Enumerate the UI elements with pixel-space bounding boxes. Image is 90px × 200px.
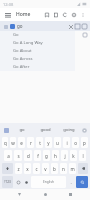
staticText: g [45, 153, 48, 159]
button[interactable]: v [42, 163, 49, 174]
button[interactable]: going [57, 123, 80, 136]
button[interactable]: t [36, 137, 43, 148]
staticText: Go [13, 32, 19, 38]
staticText: p [83, 140, 86, 146]
button[interactable]: Recent apps [65, 189, 76, 200]
staticText: e [20, 140, 23, 146]
button[interactable]: a [4, 150, 12, 161]
button[interactable]: p [81, 137, 88, 148]
button[interactable]: Menu [3, 10, 13, 20]
button[interactable]: Go A Long Way [0, 39, 75, 47]
button[interactable]: Clear [67, 23, 74, 30]
button[interactable]: ?123 [2, 176, 13, 188]
button[interactable]: Go After [0, 63, 75, 71]
staticText: y [47, 140, 50, 146]
button[interactable]: Tabs [51, 10, 60, 19]
button[interactable]: h [52, 150, 59, 161]
button[interactable]: Go [0, 31, 75, 39]
button[interactable]: Account [69, 10, 78, 19]
staticText: v [44, 166, 47, 172]
staticText: good [40, 127, 51, 133]
button[interactable]: Expand suggestions [80, 126, 88, 134]
button[interactable]: c [33, 163, 40, 174]
staticText: r [30, 140, 32, 146]
staticText: Go Across [13, 56, 33, 62]
button[interactable]: Reload [60, 10, 69, 19]
button[interactable]: q [2, 137, 8, 148]
staticText: Go About [13, 48, 32, 54]
staticText: k [72, 153, 75, 159]
staticText: going [63, 127, 75, 133]
staticText: 12:08 [3, 2, 14, 7]
button[interactable]: Back [14, 189, 25, 200]
staticText: Go After [13, 64, 30, 70]
staticText: t [39, 140, 41, 146]
staticText: English [43, 180, 54, 184]
button[interactable]: Scan [74, 23, 81, 30]
staticText: j [64, 153, 66, 159]
staticText: n [62, 166, 65, 172]
staticText: s [17, 153, 20, 159]
staticText: c [35, 166, 38, 172]
staticText: l [82, 153, 84, 159]
button[interactable]: Go Across [0, 55, 75, 63]
button[interactable]: Bookmark [42, 10, 51, 19]
button[interactable]: Settings [23, 176, 29, 188]
button[interactable]: n [60, 163, 67, 174]
staticText: b [53, 166, 56, 172]
button[interactable]: Favourite [81, 31, 89, 39]
staticText: q [4, 140, 7, 146]
button[interactable]: English [31, 176, 66, 188]
staticText: Go A Long Way [13, 40, 43, 46]
button[interactable]: Voice search [9, 23, 16, 30]
staticText: i [66, 140, 68, 146]
staticText: Home [16, 11, 31, 18]
staticText: d [27, 153, 30, 159]
staticText: h [54, 153, 57, 159]
button[interactable]: good [34, 123, 57, 136]
button[interactable]: More options [78, 10, 87, 19]
staticText: x [26, 166, 29, 172]
staticText: o [74, 140, 77, 146]
button[interactable]: Camera search [81, 23, 88, 30]
button[interactable]: i [63, 137, 70, 148]
button[interactable]: x [24, 163, 31, 174]
button[interactable]: Backspace [78, 163, 88, 174]
button[interactable]: Search engine [2, 23, 9, 30]
staticText: w [11, 140, 15, 146]
button[interactable]: Home [40, 189, 51, 200]
staticText: go [19, 127, 25, 133]
staticText: go [17, 23, 67, 29]
button[interactable]: w [10, 137, 16, 148]
staticText: m [70, 166, 75, 172]
staticText: a [7, 153, 10, 159]
staticText: . [70, 179, 72, 185]
staticText: z [17, 166, 20, 172]
button[interactable]: Emoji [15, 176, 21, 188]
button[interactable]: e [18, 137, 25, 148]
button[interactable]: y [45, 137, 52, 148]
button[interactable]: m [69, 163, 76, 174]
button[interactable]: g [43, 150, 50, 161]
button[interactable]: k [70, 150, 77, 161]
button[interactable]: Go About [0, 47, 75, 55]
staticText: f [37, 153, 39, 159]
button[interactable]: go [10, 123, 34, 136]
staticText: ?123 [4, 180, 11, 184]
button[interactable]: Google apps [2, 126, 10, 134]
button[interactable]: Shift [2, 163, 13, 174]
button[interactable]: d [24, 150, 32, 161]
button[interactable]: Search [76, 176, 88, 188]
button[interactable]: b [51, 163, 58, 174]
button[interactable]: r [27, 137, 34, 148]
button[interactable]: f [34, 150, 41, 161]
button[interactable]: z [15, 163, 22, 174]
button[interactable]: u [54, 137, 61, 148]
button[interactable]: l [79, 150, 86, 161]
button[interactable]: j [61, 150, 68, 161]
button[interactable]: . [68, 176, 74, 188]
button[interactable]: o [72, 137, 79, 148]
staticText: u [56, 140, 59, 146]
button[interactable]: s [14, 150, 22, 161]
